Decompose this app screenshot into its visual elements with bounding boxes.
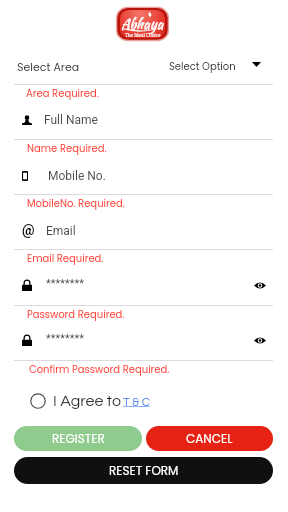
button[interactable]: Show password: [254, 337, 266, 344]
button[interactable]: Full Name: [0, 106, 288, 134]
staticText: Area Required.: [26, 86, 99, 100]
staticText: Name Required.: [27, 141, 107, 155]
button[interactable]: ********: [0, 272, 288, 299]
staticText: Full Name: [44, 113, 98, 127]
staticText: REGISTER: [52, 430, 105, 447]
staticText: Abhaya: [121, 14, 164, 34]
button[interactable]: @: [0, 217, 288, 245]
staticText: Select Area: [17, 59, 80, 74]
button[interactable]: I Agree to: [30, 392, 151, 410]
staticText: CANCEL: [186, 430, 233, 447]
button[interactable]: CANCEL: [146, 426, 273, 451]
staticText: Confirm Password Required.: [29, 362, 170, 376]
staticText: Email Required.: [27, 251, 104, 265]
staticText: Select Option: [169, 59, 236, 73]
button[interactable]: ********: [0, 327, 288, 354]
button[interactable]: REGISTER: [14, 426, 142, 451]
staticText: Mobile No.: [48, 169, 106, 183]
staticText: Password Required.: [27, 307, 125, 321]
staticText: RESET FORM: [109, 462, 179, 479]
staticText: ********: [46, 332, 84, 345]
staticText: I Agree to: [53, 393, 121, 409]
staticText: The Ideal Choice: [125, 32, 161, 38]
staticText: MobileNo. Required.: [27, 196, 125, 210]
button[interactable]: RESET FORM: [14, 457, 273, 484]
staticText: Email: [46, 224, 76, 238]
button[interactable]: Show password: [254, 282, 266, 289]
button[interactable]: Select Area: [0, 52, 288, 80]
staticText: @: [22, 222, 35, 238]
button[interactable]: T & C: [123, 396, 151, 408]
button[interactable]: Mobile No.: [0, 162, 288, 190]
staticText: ********: [46, 277, 84, 290]
